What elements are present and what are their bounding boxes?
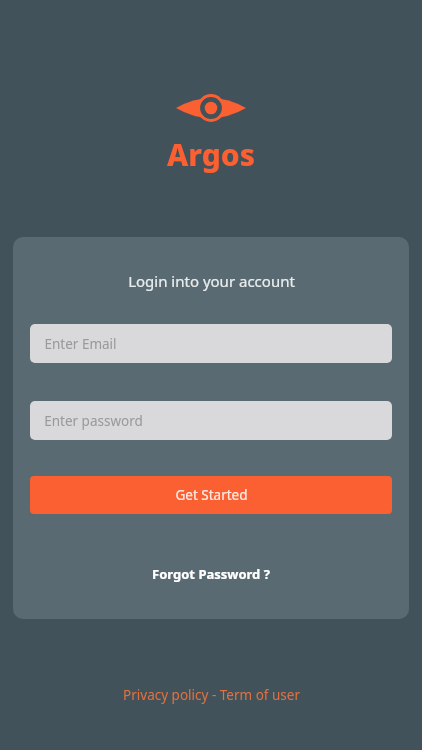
staticText: Privacy policy - Term of user bbox=[123, 686, 300, 704]
button[interactable]: Get Started bbox=[30, 476, 392, 514]
staticText: Enter password bbox=[44, 412, 143, 430]
staticText: Get Started bbox=[175, 486, 248, 504]
staticText: Login into your account bbox=[128, 271, 295, 291]
button[interactable]: Privacy policy - Term of user bbox=[115, 682, 308, 708]
button[interactable]: Forgot Password ? bbox=[144, 561, 278, 587]
button[interactable]: Enter password bbox=[30, 401, 392, 440]
staticText: Enter Email bbox=[44, 335, 117, 353]
button[interactable]: Enter Email bbox=[30, 324, 392, 363]
staticText: Forgot Password ? bbox=[152, 565, 270, 583]
staticText: Argos bbox=[167, 134, 255, 175]
other: Argos logo bbox=[176, 90, 246, 126]
